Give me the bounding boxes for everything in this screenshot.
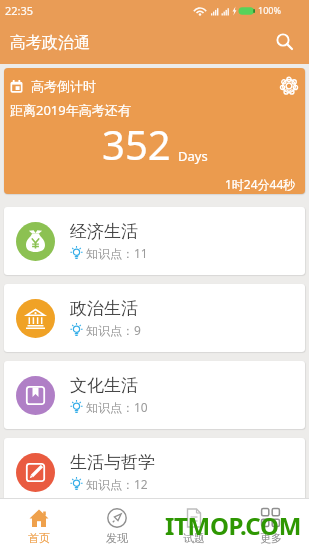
staticText: 1时24分44秒 xyxy=(225,176,296,192)
button[interactable]: 经济生活 xyxy=(4,207,305,275)
staticText: 发现 xyxy=(106,531,128,545)
staticText: 知识点：12 xyxy=(86,476,148,492)
button[interactable]: 生活与哲学 xyxy=(4,438,305,506)
staticText: 生活与哲学 xyxy=(70,452,155,473)
button[interactable]: 更多 xyxy=(232,499,309,550)
button[interactable]: 试题 xyxy=(155,499,232,550)
button[interactable]: 政治生活 xyxy=(4,284,305,352)
button[interactable] xyxy=(265,22,305,62)
staticText: 知识点：9 xyxy=(86,322,141,338)
staticText: 22:35 xyxy=(5,3,34,18)
staticText: 知识点：10 xyxy=(86,399,148,415)
staticText: 100% xyxy=(258,4,281,16)
button[interactable]: 首页 xyxy=(0,499,78,550)
staticText: 经济生活 xyxy=(70,221,138,242)
staticText: 高考政治通 xyxy=(10,33,90,53)
button[interactable]: 文化生活 xyxy=(4,361,305,429)
staticText: 首页 xyxy=(28,531,50,545)
staticText: 352 xyxy=(102,117,171,171)
staticText: 文化生活 xyxy=(70,375,138,396)
staticText: Days xyxy=(178,147,208,165)
button[interactable]: 高考倒计时 xyxy=(4,68,305,194)
staticText: 政治生活 xyxy=(70,298,138,319)
staticText: 知识点：11 xyxy=(86,245,148,261)
button[interactable]: 发现 xyxy=(78,499,155,550)
staticText: 更多 xyxy=(260,531,282,545)
staticText: 距离2019年高考还有 xyxy=(10,101,131,119)
staticText: ITMOP.COM xyxy=(165,509,301,542)
staticText: 高考倒计时 xyxy=(31,78,96,94)
staticText: 试题 xyxy=(183,531,205,545)
